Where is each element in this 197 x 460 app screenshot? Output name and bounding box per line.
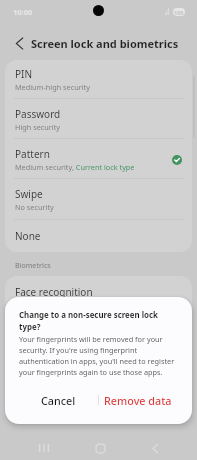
button[interactable]: Cancel: [19, 387, 98, 413]
staticText: Biometrics: [15, 261, 51, 271]
button[interactable]: Home: [87, 435, 113, 460]
button[interactable]: Remove data: [98, 387, 178, 413]
staticText: Change to a non-secure screen lock type?: [19, 310, 176, 332]
staticText: No security: [15, 202, 54, 212]
staticText: 10:00: [13, 7, 33, 17]
staticText: PIN: [15, 67, 33, 81]
staticText: Password: [15, 107, 61, 121]
staticText: Face recognition: [15, 285, 93, 299]
staticText: Remove data: [104, 393, 172, 408]
staticText: Screen lock and biometrics: [31, 36, 179, 51]
button[interactable]: Recent apps: [31, 435, 57, 460]
staticText: High security: [15, 122, 61, 132]
button[interactable]: Face recognition: [5, 276, 192, 308]
staticText: Swipe: [15, 187, 43, 201]
staticText: Medium security, Current lock type: [15, 162, 135, 172]
staticText: Your fingerprints will be removed for yo…: [19, 334, 176, 377]
button[interactable]: Fingerprints: [5, 308, 192, 340]
button[interactable]: Swipe: [5, 179, 192, 220]
button[interactable]: Password: [5, 99, 192, 139]
button[interactable]: PIN: [5, 60, 192, 99]
staticText: 100: [174, 9, 184, 16]
button[interactable]: Pattern: [5, 139, 192, 179]
button[interactable]: Navigate up: [11, 35, 27, 51]
staticText: None: [15, 229, 41, 243]
staticText: Cancel: [41, 393, 76, 408]
button[interactable]: None: [5, 220, 192, 252]
staticText: Medium-high security: [15, 82, 90, 92]
staticText: Fingerprints: [15, 317, 73, 331]
staticText: Pattern: [15, 147, 50, 161]
